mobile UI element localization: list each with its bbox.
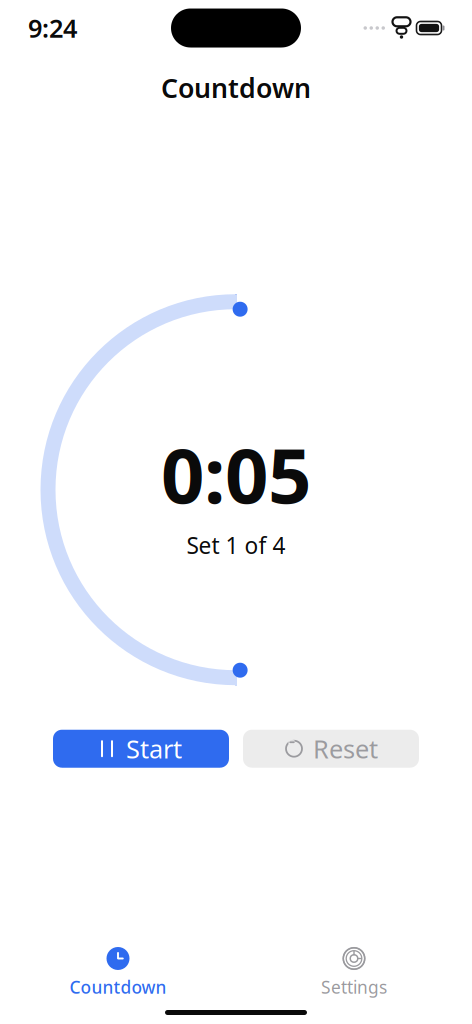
staticText: 9:24 — [28, 11, 77, 45]
staticText: Start — [126, 732, 182, 765]
staticText: Countdown — [69, 975, 166, 998]
staticText: 0:05 — [161, 423, 311, 524]
button[interactable]: Reset — [243, 730, 419, 768]
button[interactable]: Start — [53, 730, 229, 768]
button[interactable]: Settings — [274, 944, 434, 1000]
staticText: Settings — [321, 975, 387, 998]
staticText: Countdown — [161, 70, 311, 105]
staticText: Reset — [313, 732, 378, 765]
button[interactable]: Countdown — [38, 944, 198, 1000]
staticText: Set 1 of 4 — [186, 530, 285, 560]
